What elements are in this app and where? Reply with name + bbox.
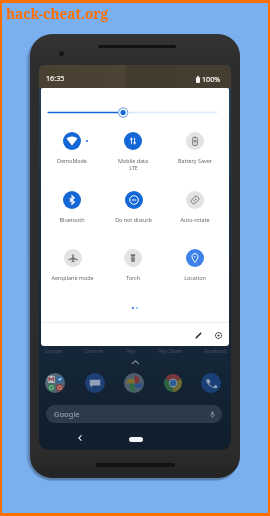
staticText: Bluetooth	[59, 216, 85, 223]
button[interactable]: Messages	[85, 373, 105, 393]
staticText: LTE	[129, 164, 138, 171]
button[interactable]: Aeroplane mode	[43, 249, 101, 281]
button[interactable]: Back	[75, 433, 84, 442]
staticText: 100%	[202, 74, 221, 84]
button[interactable]: Bluetooth	[43, 191, 101, 223]
staticText: Torch	[126, 274, 140, 281]
button[interactable]: Mobile data	[104, 132, 162, 172]
button[interactable]: DemoMode	[43, 132, 101, 164]
button[interactable]: Google	[46, 405, 222, 423]
staticText: Do not disturb	[115, 216, 152, 223]
staticText: Mobile data	[118, 157, 148, 164]
button[interactable]: Torch	[104, 249, 162, 281]
staticText: Auto-rotate	[180, 216, 210, 223]
staticText: Battery Saver	[178, 157, 212, 164]
staticText: Aeroplane mode	[51, 274, 94, 281]
button[interactable]: Home	[129, 437, 143, 442]
button[interactable]: Photos	[124, 373, 144, 393]
button[interactable]: Battery Saver	[166, 132, 224, 164]
staticText: Google	[45, 348, 62, 355]
button[interactable]: Chrome	[163, 373, 183, 393]
staticText: Play Store	[158, 348, 182, 355]
button[interactable]: Phone	[201, 373, 221, 393]
staticText: Google	[54, 409, 80, 419]
button[interactable]: Location	[166, 249, 224, 281]
staticText: Facebook	[204, 348, 227, 355]
staticText: Play	[126, 348, 136, 355]
button[interactable]: Edit	[191, 328, 205, 342]
staticText: Location	[184, 274, 206, 281]
button[interactable]: Auto-rotate	[166, 191, 224, 223]
staticText: hack-cheat.org	[6, 4, 108, 23]
button[interactable]: Settings	[211, 328, 225, 342]
button[interactable]: Do not disturb	[104, 191, 162, 223]
staticText: DemoMode	[57, 157, 87, 164]
staticText: 16:35	[46, 73, 65, 83]
staticText: Chrome	[84, 348, 103, 355]
button[interactable]: Apps folder	[45, 373, 65, 393]
